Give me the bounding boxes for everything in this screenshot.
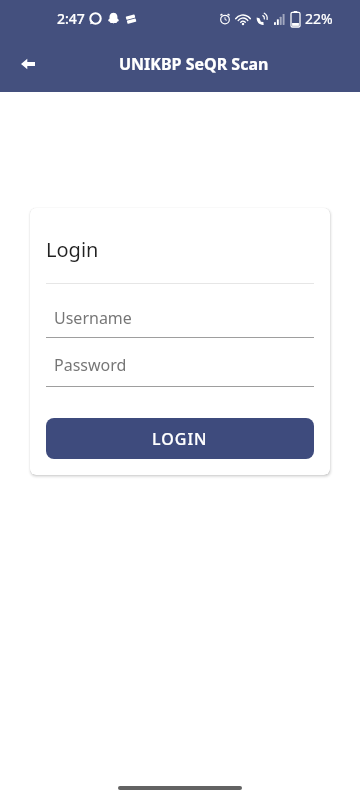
staticText: Login: [46, 236, 99, 263]
staticText: 2:47: [57, 9, 85, 28]
staticText: UNIKBP SeQR Scan: [119, 53, 269, 75]
staticText: Password: [54, 354, 127, 376]
button[interactable]: Password: [46, 354, 314, 387]
button[interactable]: [8, 44, 48, 84]
staticText: LOGIN: [152, 428, 208, 450]
staticText: Username: [54, 307, 132, 329]
staticText: 22%: [305, 9, 333, 28]
button[interactable]: Username: [46, 307, 314, 338]
button[interactable]: LOGIN: [46, 418, 314, 459]
